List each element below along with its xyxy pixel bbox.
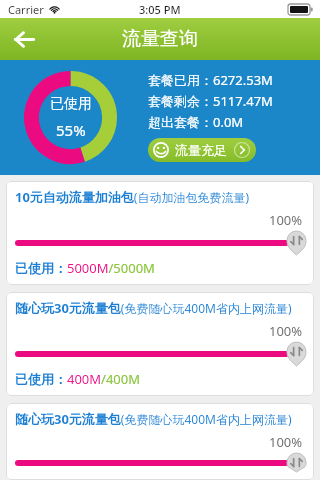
button[interactable]: Back	[0, 18, 48, 60]
staticText: Carrier	[8, 2, 44, 17]
staticText: 随心玩30元流量包(免费随心玩400M省内上网流量)	[15, 299, 292, 317]
staticText: 已使用：400M/400M	[15, 370, 141, 388]
staticText: 已使用	[50, 95, 92, 113]
staticText: 100%	[269, 433, 303, 451]
staticText: 流量查询	[122, 27, 198, 51]
button[interactable]: 10元自动流量加油包(自动加油包免费流量)	[6, 181, 314, 285]
button[interactable]: 随心玩30元流量包(免费随心玩400M省内上网流量)	[6, 403, 314, 480]
staticText: 10元自动流量加油包(自动加油包免费流量)	[15, 188, 250, 206]
staticText: 流量充足	[175, 142, 227, 158]
staticText: 55%	[56, 120, 86, 140]
staticText: 超出套餐：0.0M	[148, 113, 244, 131]
staticText: 套餐已用：6272.53M	[148, 71, 273, 89]
button[interactable]: 随心玩30元流量包(免费随心玩400M省内上网流量)	[6, 292, 314, 396]
button[interactable]: 流量充足	[148, 138, 256, 162]
staticText: 100%	[269, 211, 303, 229]
staticText: 100%	[269, 322, 303, 340]
staticText: 随心玩30元流量包(免费随心玩400M省内上网流量)	[15, 410, 292, 428]
staticText: 已使用：5000M/5000M	[15, 259, 155, 277]
staticText: 3:05 PM	[139, 2, 181, 17]
staticText: 套餐剩余：5117.47M	[148, 92, 273, 110]
